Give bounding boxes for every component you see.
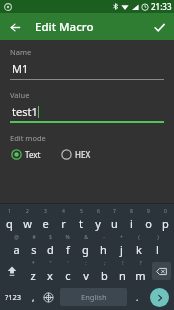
staticText: 9	[147, 208, 150, 215]
staticText: ?123	[5, 292, 22, 302]
staticText: g	[82, 242, 89, 257]
button[interactable]: "	[41, 258, 59, 284]
button[interactable]: +	[112, 232, 130, 258]
button[interactable]: 4	[54, 206, 72, 232]
staticText: p	[162, 216, 169, 231]
staticText: '	[67, 260, 69, 267]
staticText: ?	[139, 260, 142, 267]
staticText: c	[65, 268, 71, 283]
button[interactable]: Shift	[3, 261, 21, 281]
staticText: -	[103, 234, 105, 241]
staticText: $	[49, 234, 52, 241]
button[interactable]: ?123	[0, 284, 26, 310]
staticText: x	[47, 268, 53, 283]
staticText: *	[32, 260, 35, 267]
staticText: y	[95, 216, 101, 231]
staticText: &	[84, 234, 88, 241]
staticText: Edit Macro	[35, 19, 94, 35]
staticText: 3	[44, 208, 47, 215]
button[interactable]: @	[8, 232, 25, 258]
button[interactable]: #	[25, 232, 42, 258]
staticText: k	[136, 242, 142, 257]
staticText: 0	[164, 208, 167, 215]
staticText: English	[81, 292, 107, 302]
staticText: j	[120, 242, 123, 257]
staticText: v	[83, 268, 89, 283]
staticText: :	[85, 260, 87, 267]
button[interactable]: &	[76, 232, 94, 258]
staticText: l	[156, 242, 159, 257]
staticText: "	[49, 260, 52, 267]
button[interactable]: 0	[157, 206, 174, 232]
button[interactable]: 7	[106, 206, 123, 232]
button[interactable]: !	[113, 258, 131, 284]
staticText: HEX	[75, 149, 91, 160]
button[interactable]: Comma	[26, 284, 40, 310]
button[interactable]: %	[59, 232, 76, 258]
button[interactable]: 8	[123, 206, 140, 232]
staticText: r	[61, 216, 66, 231]
staticText: +	[120, 234, 123, 241]
button[interactable]: HEX	[60, 148, 92, 161]
staticText: e	[42, 216, 49, 231]
staticText: q	[6, 216, 13, 231]
button[interactable]: $	[42, 232, 59, 258]
staticText: Text	[25, 149, 41, 160]
button[interactable]: (	[130, 232, 148, 258]
staticText: Value	[10, 90, 30, 100]
staticText: t	[79, 216, 83, 231]
button[interactable]: Change language	[40, 284, 57, 310]
button[interactable]: '	[59, 258, 77, 284]
button[interactable]: 9	[140, 206, 157, 232]
staticText: m	[135, 268, 146, 283]
staticText: 5	[80, 208, 83, 215]
staticText: !	[122, 260, 124, 267]
staticText: Edit mode	[10, 133, 46, 143]
button[interactable]: Backspace	[152, 262, 171, 280]
button[interactable]: Save	[146, 14, 172, 40]
staticText: o	[145, 216, 152, 231]
staticText: n	[119, 268, 126, 283]
button[interactable]: *	[24, 258, 41, 284]
button[interactable]: Period	[130, 284, 144, 310]
staticText: i	[130, 216, 133, 231]
staticText: 2	[26, 208, 29, 215]
button[interactable]: 2	[18, 206, 36, 232]
staticText: )	[157, 234, 159, 241]
staticText: #	[32, 234, 36, 241]
button[interactable]: Text	[10, 148, 42, 161]
button[interactable]: 1	[0, 206, 18, 232]
staticText: 4	[62, 208, 65, 215]
button[interactable]: English	[60, 288, 127, 306]
staticText: Name	[10, 47, 32, 57]
staticText: M1	[12, 61, 29, 76]
button[interactable]: 5	[72, 206, 89, 232]
staticText: test1	[12, 104, 38, 119]
button[interactable]: ?	[131, 258, 149, 284]
staticText: 6	[97, 208, 100, 215]
staticText: 21:33	[151, 1, 172, 12]
staticText: .	[136, 291, 139, 303]
staticText: f	[66, 242, 70, 257]
staticText: 7	[113, 208, 116, 215]
staticText: b	[101, 268, 108, 283]
button[interactable]: 6	[89, 206, 106, 232]
button[interactable]: )	[148, 232, 166, 258]
staticText: 8	[130, 208, 133, 215]
staticText: u	[111, 216, 118, 231]
button[interactable]: :	[77, 258, 95, 284]
button[interactable]: 3	[36, 206, 54, 232]
button[interactable]: -	[94, 232, 112, 258]
staticText: s	[31, 242, 37, 257]
button[interactable]: Back	[2, 14, 28, 40]
staticText: d	[47, 242, 54, 257]
button[interactable]: Enter	[144, 284, 174, 310]
staticText: 1	[8, 208, 11, 215]
staticText: h	[100, 242, 107, 257]
staticText: w	[23, 216, 32, 231]
staticText: a	[13, 242, 20, 257]
staticText: @	[14, 234, 19, 241]
button[interactable]: ;	[95, 258, 113, 284]
staticText: ,	[32, 291, 35, 303]
staticText: z	[30, 268, 36, 283]
